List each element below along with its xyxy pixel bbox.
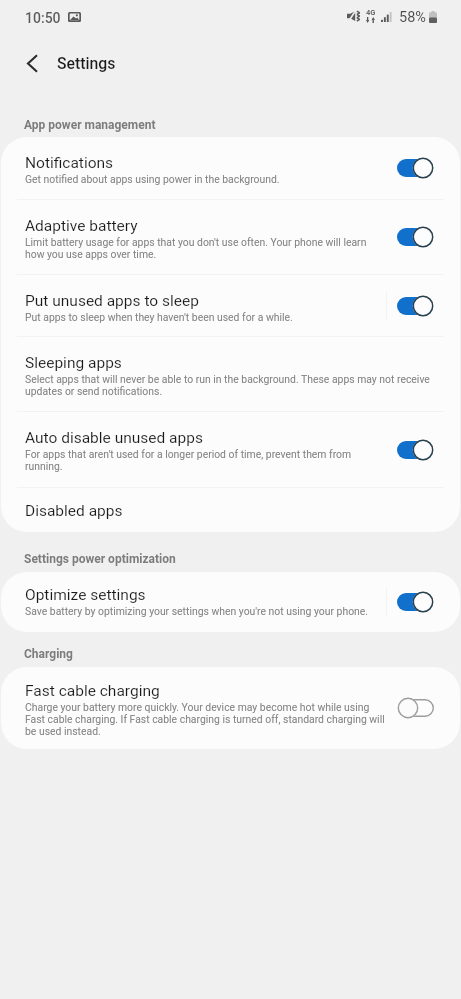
button[interactable]: Adaptive battery [1,200,460,275]
button[interactable]: Navigate up [11,42,53,84]
button[interactable]: Fast cable charging [1,667,460,749]
button[interactable]: Switch on [397,439,434,461]
staticText: Adaptive battery [25,216,138,234]
staticText: Charging [24,647,73,661]
staticText: 58% [399,9,426,25]
staticText: Charge your battery more quickly. Your d… [25,702,387,738]
staticText: Sleeping apps [25,353,122,371]
button[interactable]: Optimize settings [1,572,460,632]
staticText: Auto disable unused apps [25,428,203,446]
staticText: App power management [24,118,156,132]
staticText: Select apps that will never be able to r… [25,374,447,398]
button[interactable]: Switch on [397,591,434,613]
staticText: Settings power optimization [24,552,176,566]
staticText: Disabled apps [25,501,123,519]
button[interactable]: Auto disable unused apps [1,412,460,488]
button[interactable]: Switch on [397,157,434,179]
staticText: Put apps to sleep when they haven't been… [25,312,293,324]
button[interactable]: Notifications [1,137,460,200]
staticText: Save battery by optimizing your settings… [25,606,369,618]
button[interactable]: Switch on [397,295,434,317]
staticText: Get notified about apps using power in t… [25,174,280,186]
staticText: Fast cable charging [25,681,160,699]
staticText: Optimize settings [25,585,146,603]
button[interactable]: Disabled apps [1,488,460,532]
staticText: For apps that aren't used for a longer p… [25,449,387,473]
staticText: Notifications [25,153,114,171]
staticText: 10:50 [25,10,61,26]
staticText: Put unused apps to sleep [25,291,199,309]
button[interactable]: Switch on [397,226,434,248]
button[interactable]: Put unused apps to sleep [1,275,460,337]
button[interactable]: Switch off [397,697,434,719]
button[interactable]: Sleeping apps [1,337,460,412]
staticText: Settings [57,55,116,73]
staticText: 4G [366,9,376,17]
staticText: Limit battery usage for apps that you do… [25,237,387,261]
